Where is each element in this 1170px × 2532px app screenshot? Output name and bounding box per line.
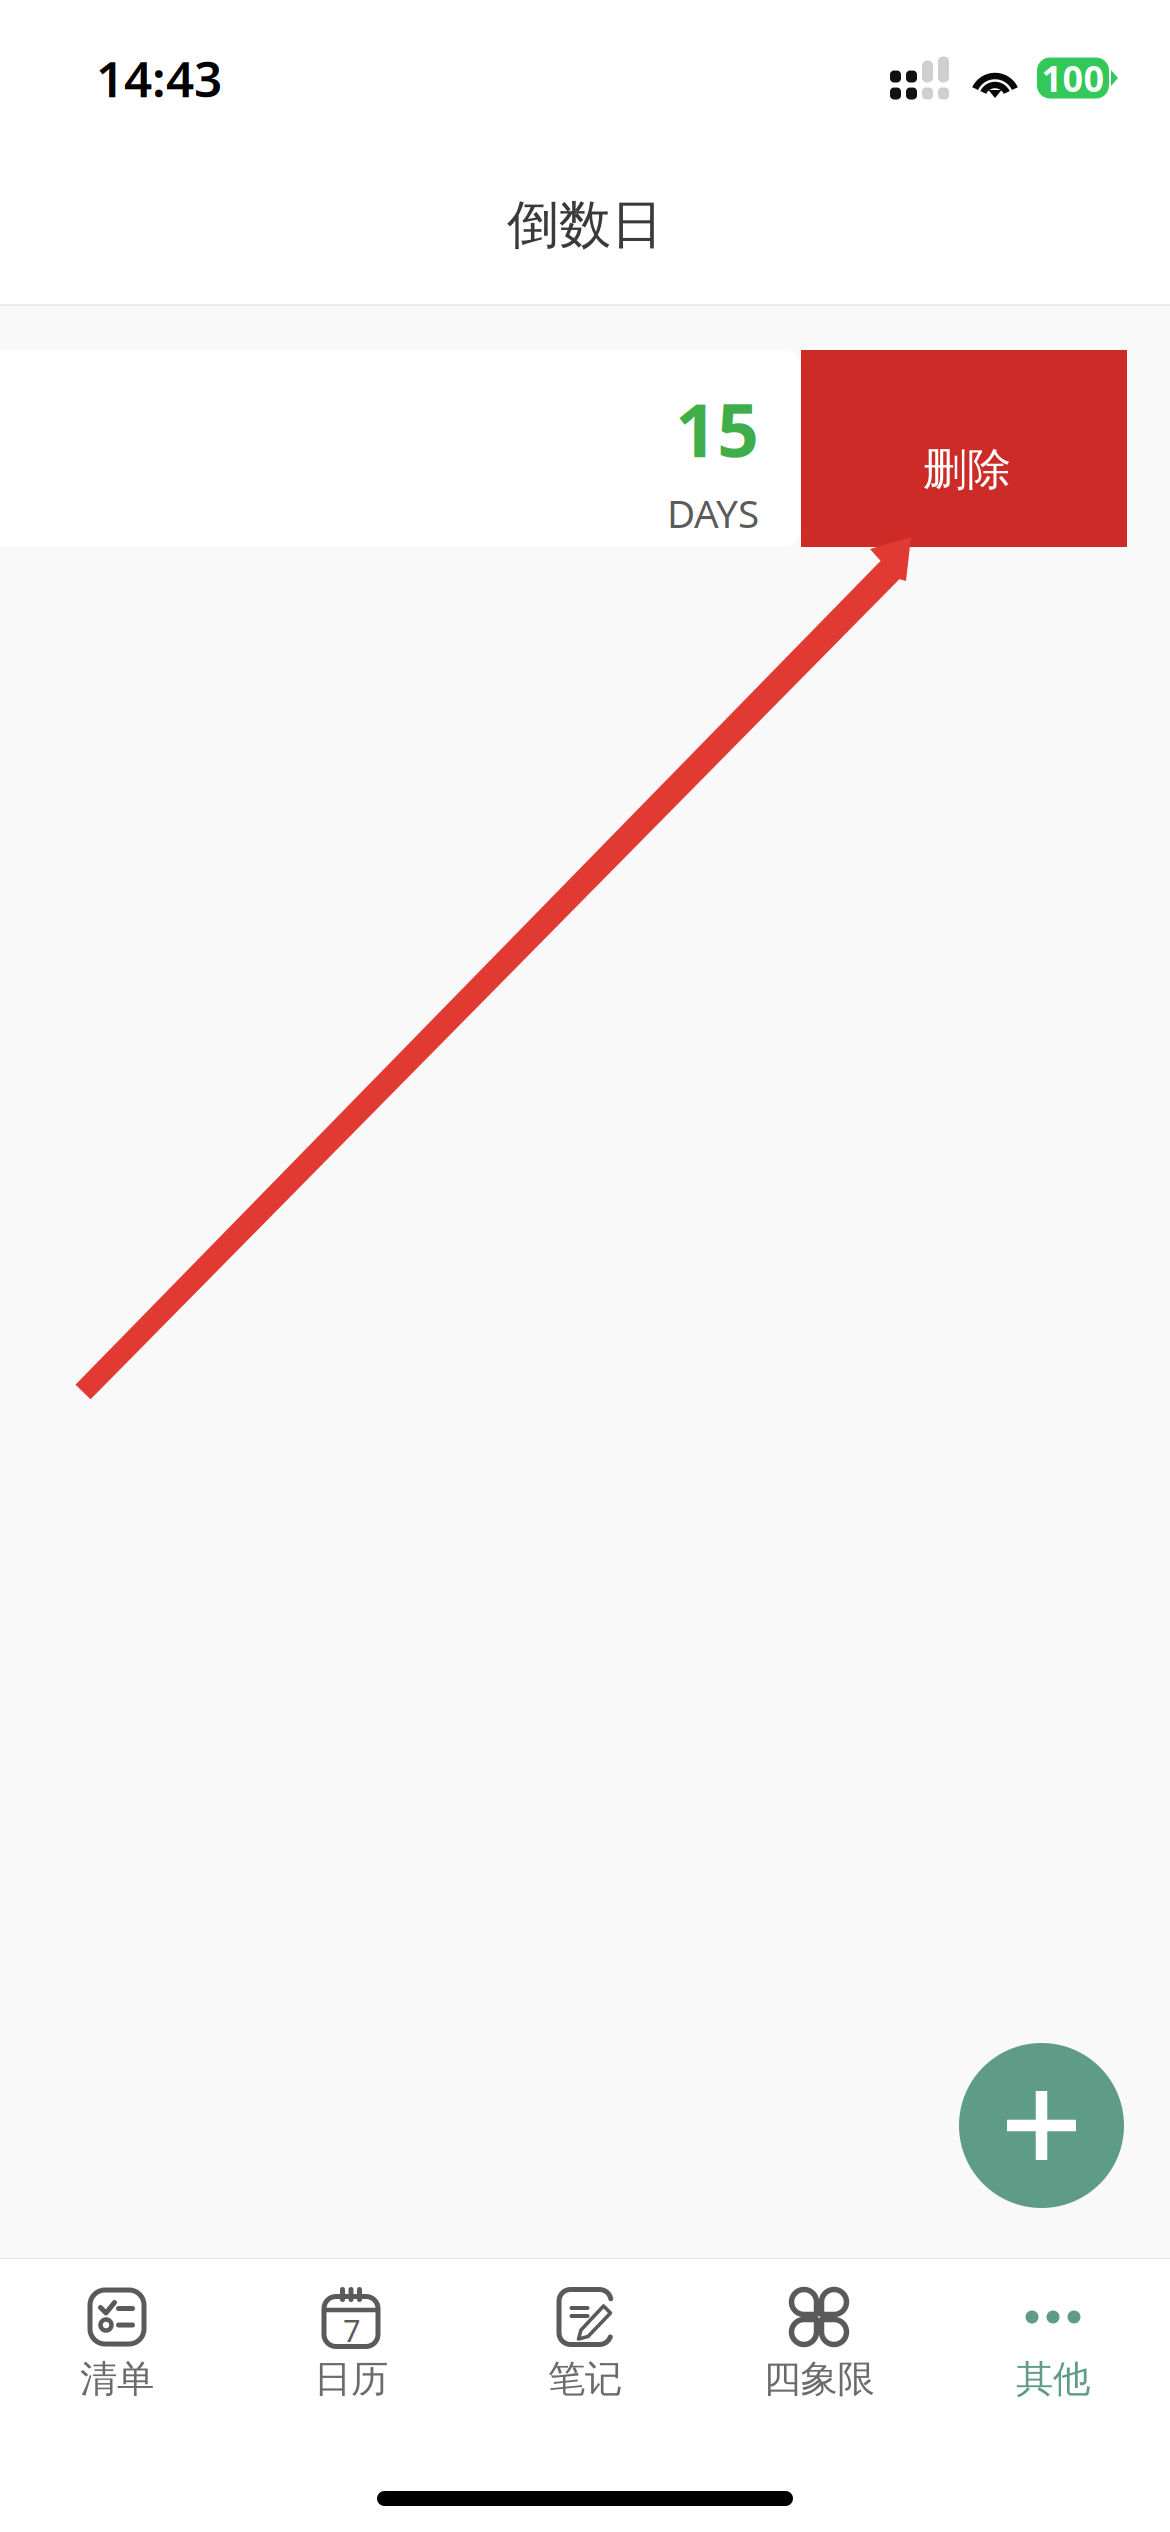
button[interactable]: 新建: [959, 2043, 1124, 2208]
staticText: 清单: [80, 2356, 154, 2402]
button[interactable]: 清单: [0, 2259, 234, 2425]
button[interactable]: 笔记: [468, 2259, 702, 2425]
staticText: 100: [1041, 54, 1104, 102]
button[interactable]: 15: [0, 350, 801, 547]
button[interactable]: 四象限: [702, 2259, 936, 2425]
staticText: 日历: [314, 2356, 388, 2402]
button[interactable]: 删除: [801, 350, 1127, 547]
staticText: DAYS: [667, 487, 759, 539]
staticText: 14:43: [96, 45, 222, 111]
staticText: 倒数日: [507, 193, 663, 257]
button[interactable]: 7: [234, 2259, 468, 2425]
staticText: 15: [675, 380, 759, 477]
staticText: 四象限: [763, 2356, 874, 2402]
staticText: 删除: [923, 442, 1011, 496]
button[interactable]: 其他: [936, 2259, 1170, 2425]
staticText: 其他: [1016, 2356, 1090, 2402]
staticText: 7: [343, 2310, 361, 2350]
staticText: 笔记: [548, 2356, 622, 2402]
